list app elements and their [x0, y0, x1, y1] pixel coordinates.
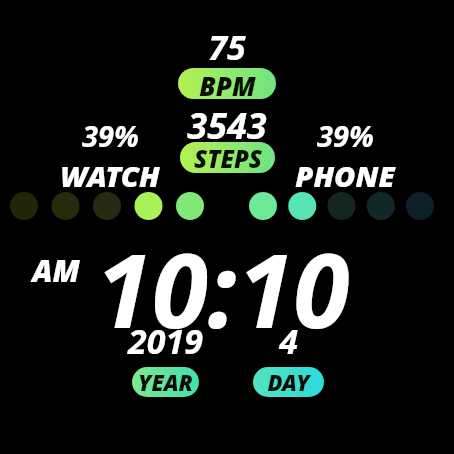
- button[interactable]: 4: [233, 318, 343, 397]
- staticText: 39%: [317, 116, 374, 155]
- staticText: YEAR: [138, 367, 193, 397]
- staticText: 3543: [187, 101, 267, 150]
- button[interactable]: DAY: [253, 367, 324, 397]
- button[interactable]: STEPS: [180, 142, 275, 173]
- button[interactable]: 10:10: [95, 219, 350, 358]
- staticText: 2019: [128, 318, 203, 364]
- staticText: 75: [208, 24, 246, 70]
- staticText: 4: [279, 318, 298, 364]
- button[interactable]: 39%: [45, 116, 175, 195]
- staticText: STEPS: [194, 142, 262, 173]
- staticText: PHONE: [295, 156, 395, 195]
- button[interactable]: BPM: [178, 68, 276, 99]
- staticText: 39%: [82, 116, 139, 155]
- button[interactable]: 39%: [280, 116, 410, 195]
- staticText: DAY: [267, 367, 310, 397]
- staticText: AM: [32, 250, 80, 291]
- staticText: WATCH: [60, 156, 160, 195]
- button[interactable]: AM: [32, 250, 80, 291]
- button[interactable]: YEAR: [132, 367, 199, 397]
- staticText: BPM: [199, 68, 256, 99]
- button[interactable]: 2019: [110, 318, 220, 397]
- staticText: 10:10: [95, 219, 350, 358]
